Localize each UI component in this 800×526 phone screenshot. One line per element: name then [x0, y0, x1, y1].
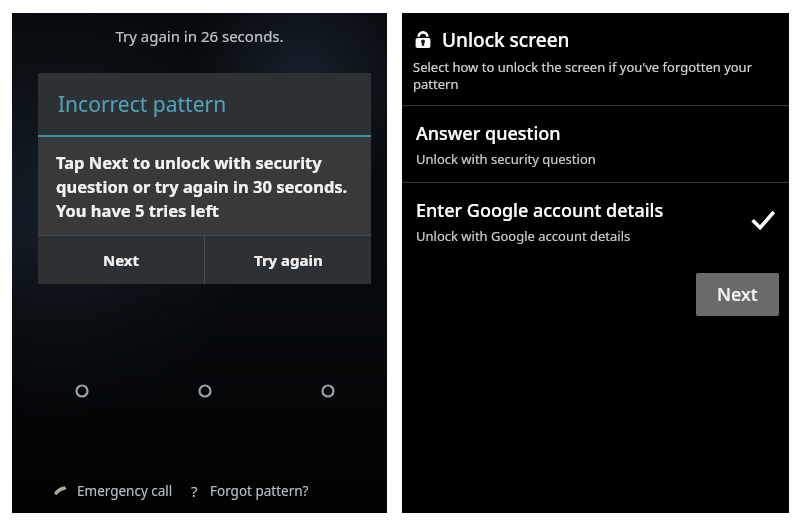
staticText: Incorrect pattern	[58, 90, 227, 119]
button[interactable]: ?	[191, 481, 309, 501]
button[interactable]: Next	[38, 236, 204, 284]
staticText: Forgot pattern?	[210, 482, 309, 500]
button[interactable]: Answer question	[402, 106, 789, 182]
staticText: Emergency call	[77, 482, 173, 500]
staticText: Unlock with Google account details	[416, 227, 631, 245]
staticText: Unlock screen	[442, 27, 570, 53]
staticText: Next	[717, 282, 758, 307]
button[interactable]: Try again	[205, 236, 371, 284]
staticText: Unlock with security question	[416, 150, 596, 168]
button[interactable]: Enter Google account details	[402, 183, 789, 259]
staticText: Next	[103, 250, 140, 270]
staticText: Answer question	[416, 121, 561, 146]
staticText: Try again in 26 seconds.	[12, 26, 387, 46]
other: Lock	[413, 30, 433, 50]
other: Selected	[751, 209, 775, 233]
staticText: Enter Google account details	[416, 198, 664, 223]
staticText: Select how to unlock the screen if you'v…	[413, 58, 779, 93]
button[interactable]: Emergency call	[52, 482, 173, 500]
staticText: Try again	[254, 250, 323, 270]
staticText: ?	[191, 481, 198, 501]
staticText: Tap Next to unlock with security questio…	[56, 151, 353, 222]
button[interactable]: Next	[696, 273, 779, 316]
